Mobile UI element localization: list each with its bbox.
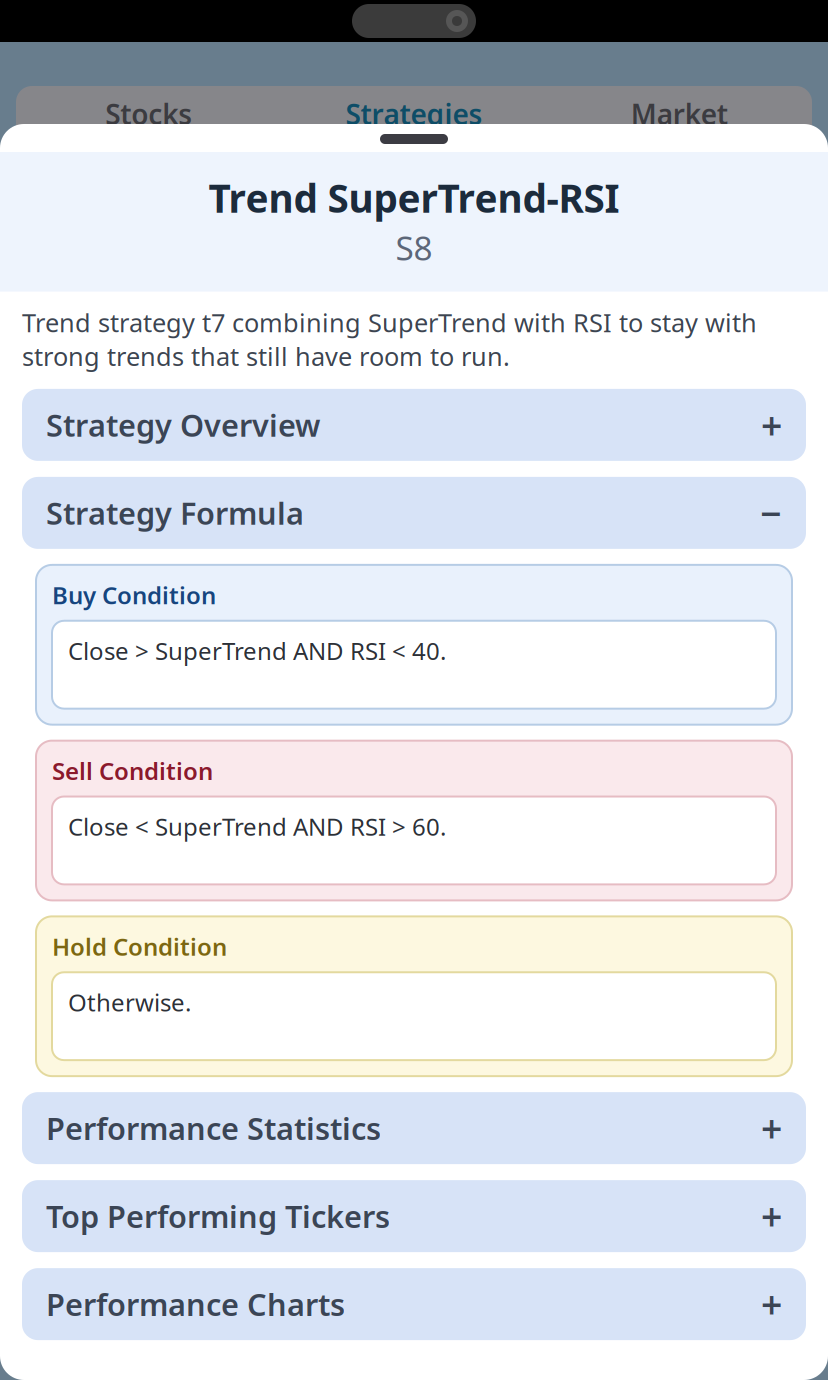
button[interactable]: Performance Statistics [22, 1092, 806, 1164]
button[interactable]: Top Performing Tickers [22, 1180, 806, 1252]
staticText: + [761, 400, 782, 450]
button[interactable]: Market [547, 86, 812, 142]
staticText: Sell Condition [52, 755, 213, 786]
staticText: Stocks [105, 95, 192, 133]
staticText: + [761, 1103, 782, 1153]
staticText: Otherwise. [68, 986, 191, 1018]
staticText: + [761, 1191, 782, 1241]
staticText: Performance Statistics [46, 1108, 381, 1148]
staticText: − [760, 488, 782, 538]
button[interactable]: Strategy Formula [22, 477, 806, 549]
staticText: Strategies [345, 95, 482, 133]
staticText: + [761, 1279, 782, 1329]
staticText: Trend strategy t7 combining SuperTrend w… [22, 306, 757, 373]
button[interactable]: Strategies [281, 86, 547, 142]
staticText: Close < SuperTrend AND RSI > 60. [68, 810, 446, 842]
button[interactable]: Stocks [16, 86, 281, 142]
staticText: Hold Condition [52, 930, 227, 962]
staticText: S8 [395, 225, 432, 270]
staticText: Trend SuperTrend-RSI [208, 172, 619, 223]
button[interactable]: Strategy Overview [22, 389, 806, 461]
staticText: Strategy Formula [46, 492, 304, 533]
staticText: Close > SuperTrend AND RSI < 40. [68, 635, 446, 667]
button[interactable]: Performance Charts [22, 1268, 806, 1340]
staticText: Buy Condition [52, 579, 216, 611]
staticText: Performance Charts [46, 1284, 345, 1324]
staticText: Strategy Overview [46, 404, 320, 445]
staticText: Top Performing Tickers [46, 1196, 390, 1236]
staticText: Market [631, 95, 728, 133]
